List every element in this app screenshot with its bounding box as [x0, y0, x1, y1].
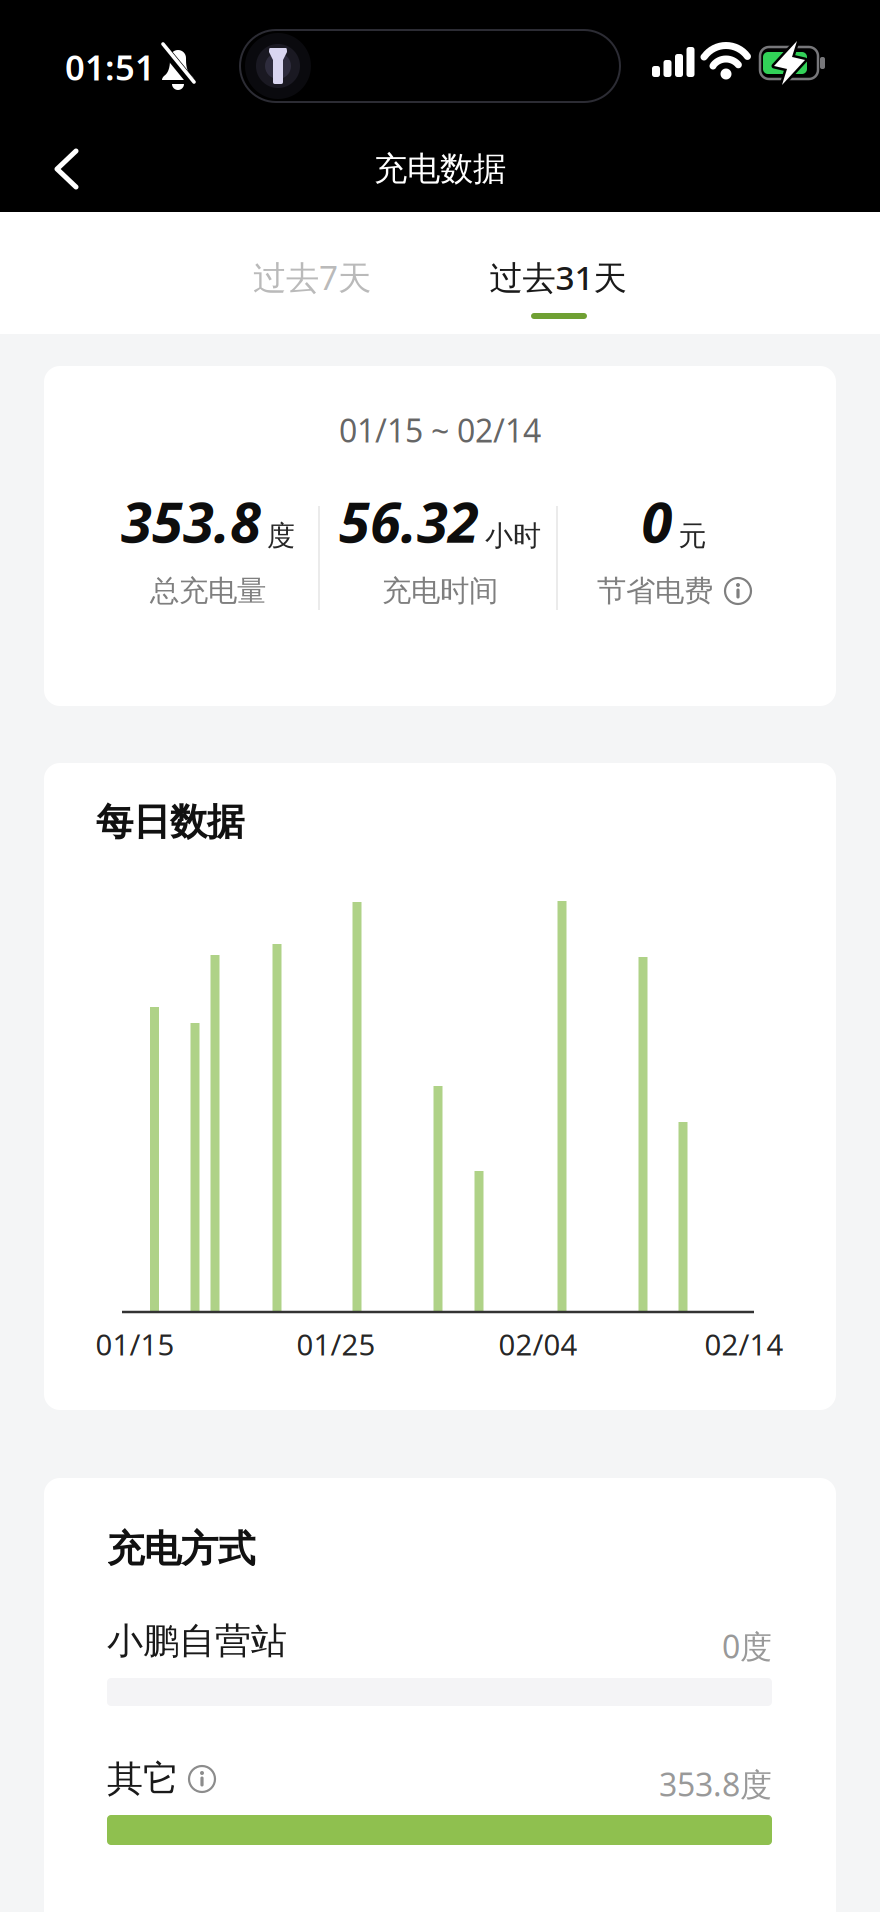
staticText: 01:51 [65, 44, 155, 90]
staticText: 过去7天 [253, 255, 371, 299]
staticText: 小鹏自营站 [107, 1619, 287, 1663]
button[interactable] [189, 1766, 215, 1792]
staticText: 元 [678, 519, 706, 553]
staticText: 0度 [722, 1625, 772, 1667]
staticText: 56.32 [339, 484, 479, 558]
button[interactable] [725, 578, 751, 604]
staticText: 01/25 [296, 1324, 375, 1363]
button[interactable] [22, 126, 110, 212]
staticText: 节省电费 [597, 573, 713, 609]
staticText: 01/15 [95, 1324, 174, 1363]
button[interactable]: 过去7天 [207, 229, 417, 325]
staticText: 充电数据 [374, 148, 506, 189]
staticText: 小时 [485, 519, 541, 553]
staticText: 353.8 [121, 484, 261, 558]
button[interactable]: 过去31天 [448, 232, 668, 328]
staticText: 总充电量 [150, 573, 266, 609]
staticText: 0 [641, 484, 672, 558]
staticText: 其它 [107, 1757, 179, 1801]
staticText: 度 [267, 519, 295, 553]
staticText: 过去31天 [489, 255, 626, 299]
staticText: 充电时间 [382, 573, 498, 609]
staticText: 02/14 [704, 1324, 783, 1363]
staticText: 01/15 ~ 02/14 [339, 409, 541, 451]
staticText: 充电方式 [107, 1526, 255, 1572]
staticText: 02/04 [498, 1324, 577, 1363]
staticText: 每日数据 [96, 799, 244, 845]
staticText: 353.8度 [659, 1763, 772, 1805]
